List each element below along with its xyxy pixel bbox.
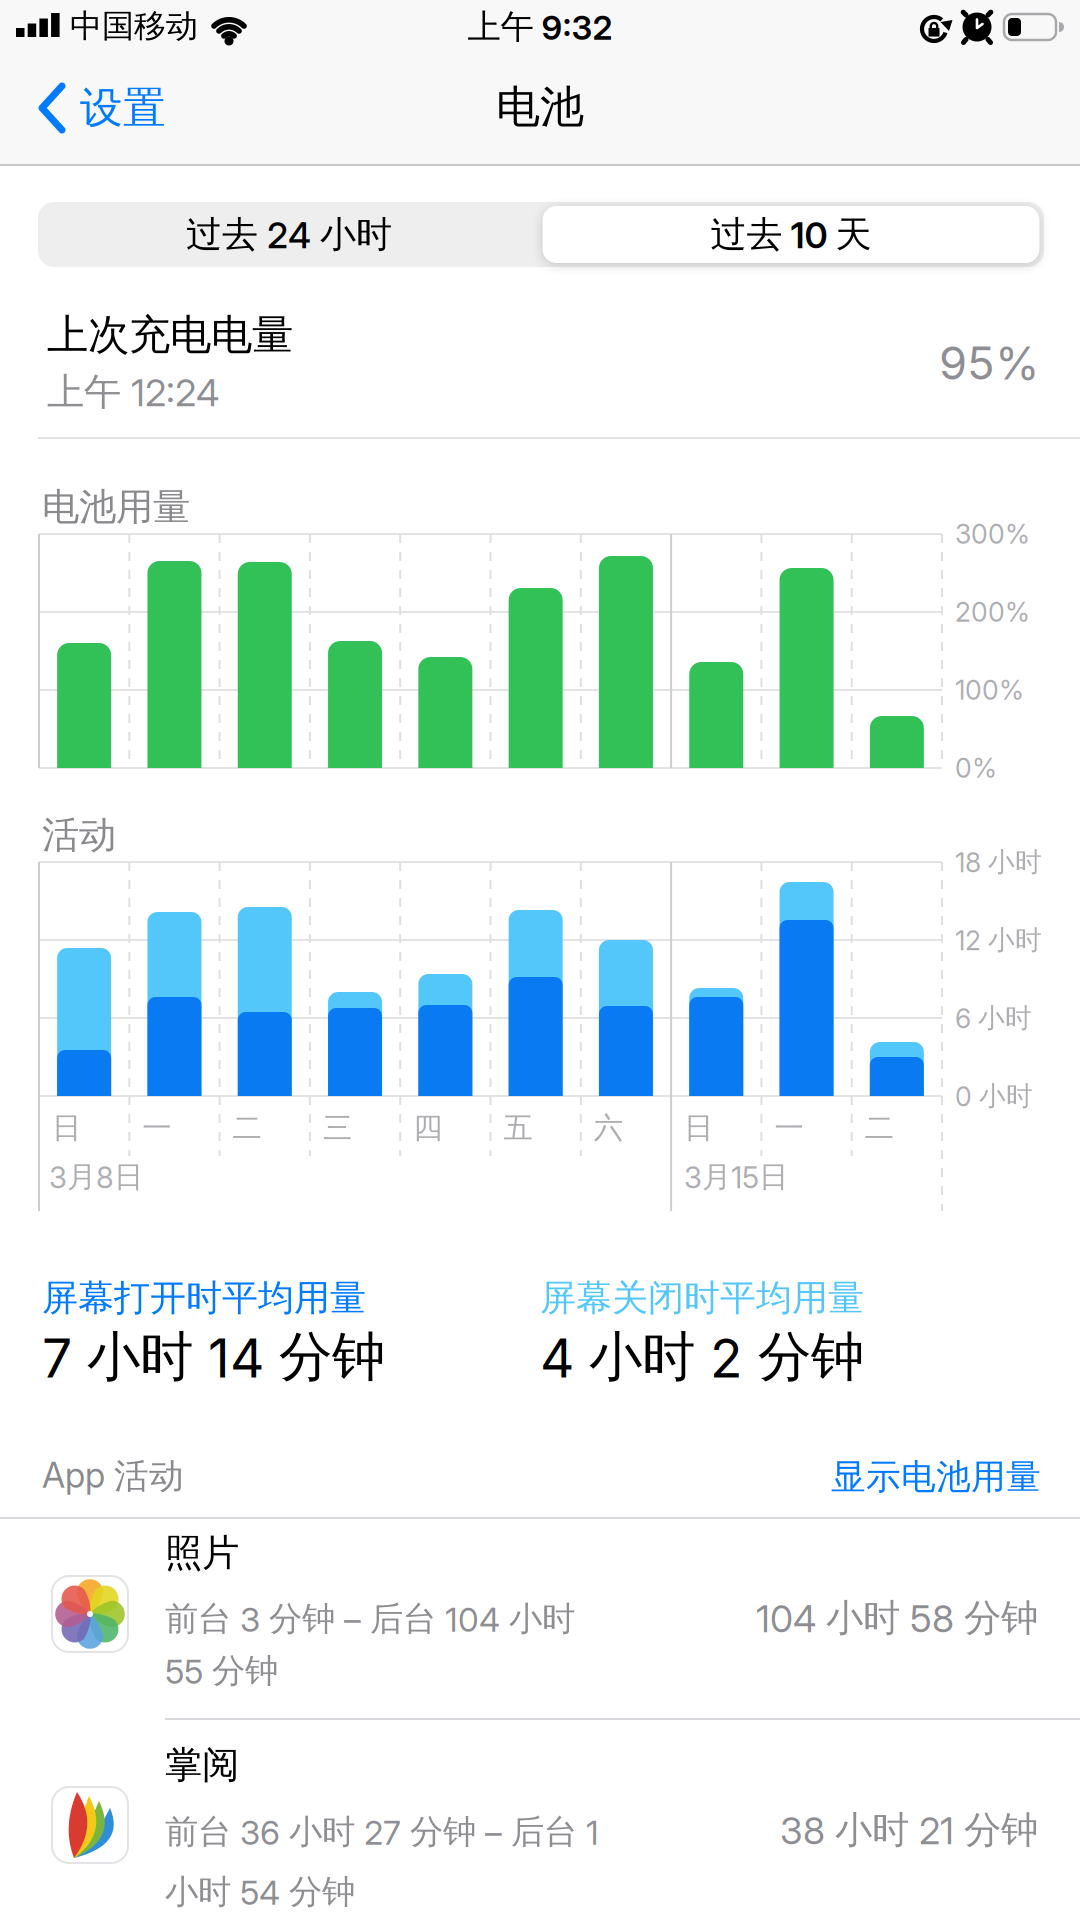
staticText: 3月15日 (684, 1159, 788, 1195)
button[interactable]: 过去 24 小时 (39, 202, 539, 267)
staticText: 18 小时 (955, 846, 1042, 878)
staticText: 五 (503, 1110, 532, 1146)
staticText: 上午 9:32 (467, 6, 612, 47)
staticText: 38 小时 21 分钟 (780, 1807, 1038, 1853)
staticText: 12 小时 (955, 924, 1042, 956)
staticText: 二 (233, 1110, 262, 1146)
staticText: 二 (865, 1110, 894, 1146)
staticText: 小时 54 分钟 (165, 1871, 355, 1912)
staticText: 电池用量 (42, 484, 190, 530)
staticText: 中国移动 (70, 6, 198, 46)
staticText: 95% (939, 336, 1040, 390)
staticText: 照片 (165, 1530, 239, 1576)
button[interactable]: 显示电池用量 (641, 1449, 1041, 1505)
staticText: 显示电池用量 (831, 1456, 1041, 1498)
staticText: 0 小时 (955, 1080, 1033, 1112)
staticText: 104 小时 58 分钟 (756, 1595, 1038, 1641)
staticText: 日 (52, 1110, 81, 1146)
staticText: 六 (594, 1110, 623, 1146)
button[interactable]: 掌阅 (0, 1719, 1080, 1920)
staticText: 活动 (42, 812, 116, 858)
button[interactable]: 照片 (0, 1518, 1080, 1718)
staticText: 上午 12:24 (47, 369, 219, 415)
staticText: 过去 10 天 (710, 212, 871, 257)
staticText: 前台 36 小时 27 分钟 – 后台 1 (165, 1811, 599, 1852)
staticText: 4 小时 2 分钟 (540, 1324, 864, 1390)
staticText: 上次充电电量 (47, 310, 293, 360)
staticText: 电池 (496, 80, 584, 134)
staticText: 100% (955, 674, 1024, 706)
staticText: 55 分钟 (165, 1650, 278, 1691)
staticText: 屏幕关闭时平均用量 (540, 1276, 864, 1320)
staticText: 四 (413, 1110, 442, 1146)
staticText: 200% (955, 596, 1030, 628)
staticText: 掌阅 (165, 1742, 239, 1788)
staticText: 屏幕打开时平均用量 (42, 1276, 366, 1320)
staticText: 前台 3 分钟 – 后台 104 小时 (165, 1598, 575, 1639)
button[interactable]: 过去 10 天 (542, 206, 1039, 263)
staticText: 0% (955, 752, 997, 784)
staticText: 日 (684, 1110, 713, 1146)
staticText: App 活动 (42, 1455, 184, 1497)
staticText: 一 (142, 1110, 171, 1146)
staticText: 6 小时 (955, 1002, 1032, 1034)
staticText: 三 (323, 1110, 352, 1146)
staticText: 设置 (80, 82, 166, 134)
staticText: 一 (774, 1110, 803, 1146)
staticText: 300% (955, 518, 1030, 550)
staticText: 3月8日 (49, 1159, 143, 1195)
staticText: 过去 24 小时 (186, 212, 392, 257)
button[interactable]: 返回设置 (36, 70, 266, 146)
staticText: 7 小时 14 分钟 (42, 1324, 385, 1390)
